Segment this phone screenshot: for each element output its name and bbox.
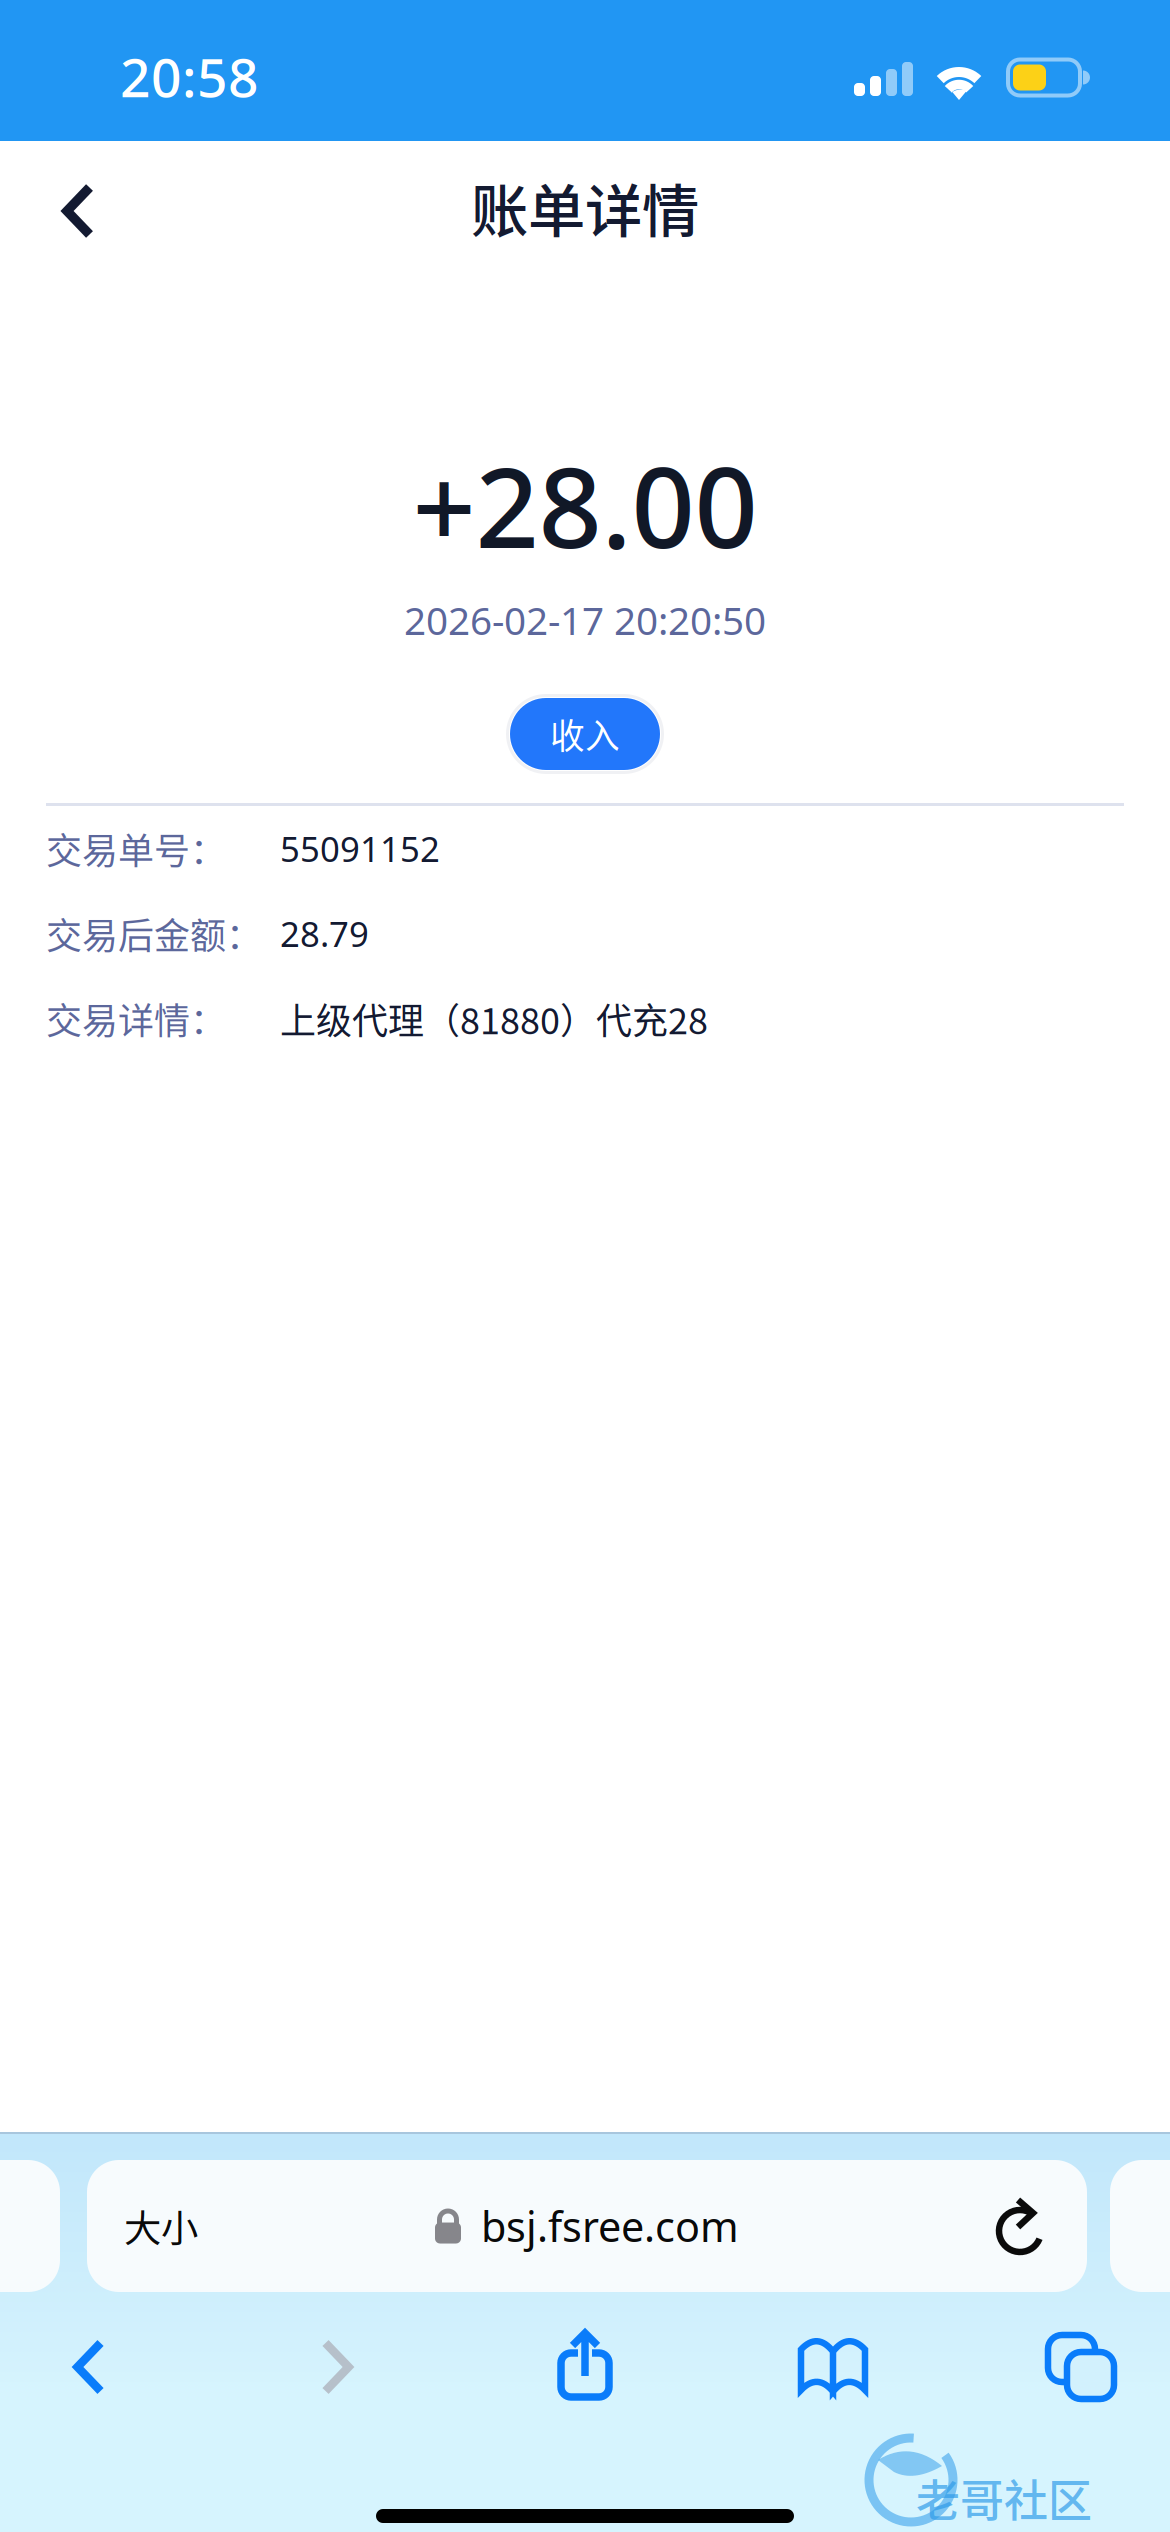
button[interactable]: Bookmarks [747, 2315, 919, 2419]
button[interactable]: Share [499, 2315, 671, 2419]
staticText: 55091152 [280, 825, 440, 872]
staticText: 20:58 [120, 40, 259, 113]
staticText: 账单详情 [471, 165, 699, 248]
staticText: 交易详情： [46, 992, 226, 1044]
button[interactable]: Back [3, 2315, 175, 2419]
staticText: 28.79 [280, 910, 369, 957]
button[interactable]: 收入 [510, 698, 660, 770]
button[interactable]: Back [19, 151, 138, 271]
button[interactable]: Forward [251, 2315, 423, 2419]
staticText: 交易单号： [46, 822, 226, 874]
staticText: 收入 [550, 709, 620, 759]
staticText: 上级代理（81880）代充28 [280, 992, 708, 1044]
staticText: bsj.fsree.com [481, 2198, 739, 2254]
staticText: 2026-02-17 20:20:50 [404, 594, 766, 646]
staticText: 大小 [124, 2199, 198, 2253]
button[interactable]: Tabs [995, 2315, 1167, 2419]
button[interactable]: 大小 [87, 2160, 1087, 2292]
staticText: +28.00 [412, 430, 757, 580]
staticText: 老哥社区 [916, 2466, 1092, 2530]
staticText: 交易后金额： [46, 907, 262, 959]
